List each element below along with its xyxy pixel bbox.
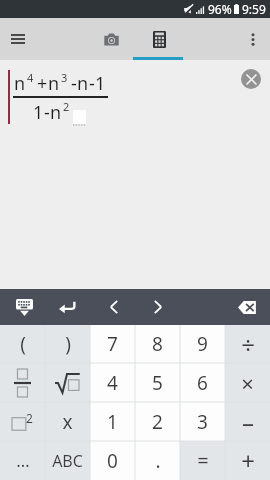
staticText: n xyxy=(48,71,60,96)
button[interactable]: 4 xyxy=(90,363,135,402)
button[interactable]: = xyxy=(180,441,225,480)
button[interactable]: 1 xyxy=(90,402,135,441)
button[interactable]: 0 xyxy=(90,441,135,480)
staticText: 3 xyxy=(61,70,68,85)
button[interactable]: ABC xyxy=(45,441,90,480)
staticText: × xyxy=(241,368,254,398)
staticText: 4 xyxy=(27,70,34,85)
staticText: 5 xyxy=(152,370,163,396)
button[interactable]: ÷ xyxy=(225,325,270,363)
button[interactable]: Navigation menu xyxy=(1,22,35,56)
staticText: ABC xyxy=(52,450,83,472)
button[interactable]: Move right xyxy=(136,289,180,325)
staticText: 3 xyxy=(197,409,208,435)
button[interactable] xyxy=(0,363,45,402)
staticText: ) xyxy=(65,331,71,357)
button[interactable]: – xyxy=(225,402,270,441)
staticText: n xyxy=(77,71,89,96)
staticText: ( xyxy=(20,331,26,357)
button[interactable]: 3 xyxy=(180,402,225,441)
button[interactable]: x xyxy=(45,402,90,441)
button[interactable]: + xyxy=(225,441,270,480)
button[interactable]: Hide keyboard xyxy=(0,289,48,325)
button[interactable]: 2 xyxy=(0,402,45,441)
staticText: 6 xyxy=(197,370,208,396)
button[interactable]: 5 xyxy=(135,363,180,402)
staticText: 7 xyxy=(107,331,118,357)
staticText: 2 xyxy=(152,409,163,435)
button[interactable]: Clear expression xyxy=(241,69,261,89)
staticText: 1 xyxy=(95,71,106,96)
button[interactable]: × xyxy=(225,363,270,402)
staticText: 9:59 xyxy=(242,1,266,17)
staticText: 0 xyxy=(107,448,118,474)
staticText: 2 xyxy=(63,99,70,114)
staticText: n xyxy=(14,71,26,96)
staticText: 96% xyxy=(208,1,232,17)
staticText: + xyxy=(37,71,48,96)
button[interactable]: More options xyxy=(238,24,268,54)
button[interactable]: Keypad input xyxy=(142,22,176,56)
button[interactable]: Backspace xyxy=(224,289,270,325)
staticText: . xyxy=(155,448,161,474)
button[interactable]: ( xyxy=(0,325,45,363)
button[interactable]: 8 xyxy=(135,325,180,363)
button[interactable]: Camera input xyxy=(94,22,128,56)
staticText: 9 xyxy=(197,331,208,357)
staticText: … xyxy=(16,449,30,472)
staticText: - xyxy=(89,71,95,96)
button[interactable]: ) xyxy=(45,325,90,363)
staticText: 1 xyxy=(107,409,118,435)
staticText: 4 xyxy=(107,370,118,396)
button[interactable]: 7 xyxy=(90,325,135,363)
button[interactable]: … xyxy=(0,441,45,480)
button[interactable]: Enter xyxy=(46,289,88,325)
button[interactable]: 9 xyxy=(180,325,225,363)
button[interactable]: Move left xyxy=(92,289,136,325)
staticText: 8 xyxy=(152,331,163,357)
staticText: = xyxy=(197,447,209,474)
staticText: 1 xyxy=(33,100,44,125)
staticText: x xyxy=(62,409,73,435)
staticText: - xyxy=(44,100,50,125)
staticText: 2 xyxy=(26,410,33,426)
staticText: – xyxy=(242,405,254,438)
staticText: - xyxy=(71,71,77,96)
staticText: n xyxy=(50,100,62,125)
button[interactable]: 6 xyxy=(180,363,225,402)
button[interactable]: 2 xyxy=(135,402,180,441)
button[interactable] xyxy=(45,363,90,402)
staticText: + xyxy=(241,444,255,477)
button[interactable]: . xyxy=(135,441,180,480)
staticText: ÷ xyxy=(241,328,255,361)
